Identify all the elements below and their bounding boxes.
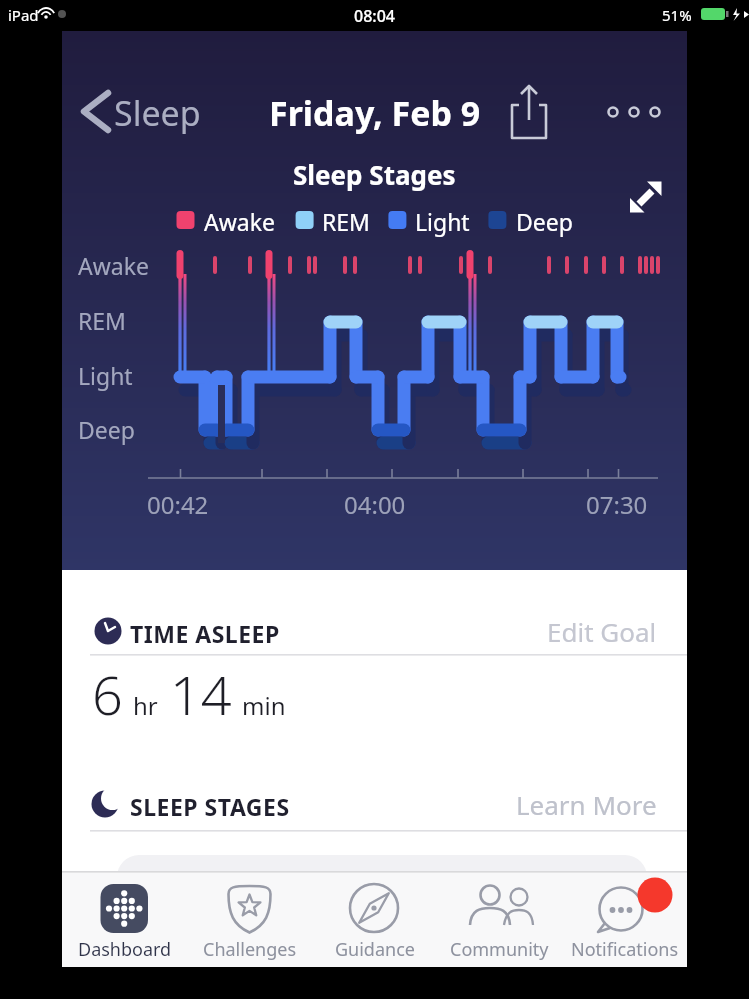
staticText: Sleep xyxy=(114,90,201,136)
button[interactable]: Edit Goal xyxy=(507,611,657,651)
staticText: 04:00 xyxy=(344,488,406,521)
staticText: 14 xyxy=(170,657,232,731)
staticText: TIME ASLEEP xyxy=(130,618,280,649)
button[interactable]: Sleep xyxy=(76,86,226,138)
staticText: iPad xyxy=(8,5,39,25)
button[interactable]: Dashboard xyxy=(62,873,187,967)
staticText: Friday, Feb 9 xyxy=(269,90,481,136)
button[interactable] xyxy=(622,173,670,221)
staticText: 07:30 xyxy=(586,488,648,521)
staticText: 00:42 xyxy=(147,488,209,521)
staticText: Dashboard xyxy=(78,937,172,962)
button[interactable] xyxy=(602,93,666,131)
staticText: 6 xyxy=(92,657,123,731)
staticText: Awake xyxy=(204,206,275,237)
button[interactable]: Guidance xyxy=(312,873,437,967)
button[interactable]: Community xyxy=(437,873,562,967)
staticText: Challenges xyxy=(203,937,297,962)
staticText: REM xyxy=(78,305,126,336)
staticText: Light xyxy=(78,360,133,391)
staticText: Deep xyxy=(78,414,135,445)
staticText: hr xyxy=(133,689,158,722)
staticText: Edit Goal xyxy=(547,614,657,649)
staticText: Notifications xyxy=(571,937,679,962)
staticText: Learn More xyxy=(516,787,657,822)
button[interactable] xyxy=(506,79,552,145)
staticText: Sleep Stages xyxy=(293,157,456,192)
staticText: 08:04 xyxy=(354,5,395,27)
staticText: Deep xyxy=(516,206,573,237)
staticText: Community xyxy=(450,937,549,962)
staticText: Light xyxy=(415,206,470,237)
staticText: 51% xyxy=(662,5,692,25)
button[interactable]: Challenges xyxy=(187,873,312,967)
staticText: REM xyxy=(322,206,370,237)
button[interactable]: Learn More xyxy=(507,784,657,824)
staticText: Guidance xyxy=(335,937,415,962)
button[interactable]: Notifications xyxy=(562,873,687,967)
staticText: min xyxy=(242,689,286,722)
staticText: SLEEP STAGES xyxy=(130,791,290,822)
staticText: Awake xyxy=(78,250,149,281)
